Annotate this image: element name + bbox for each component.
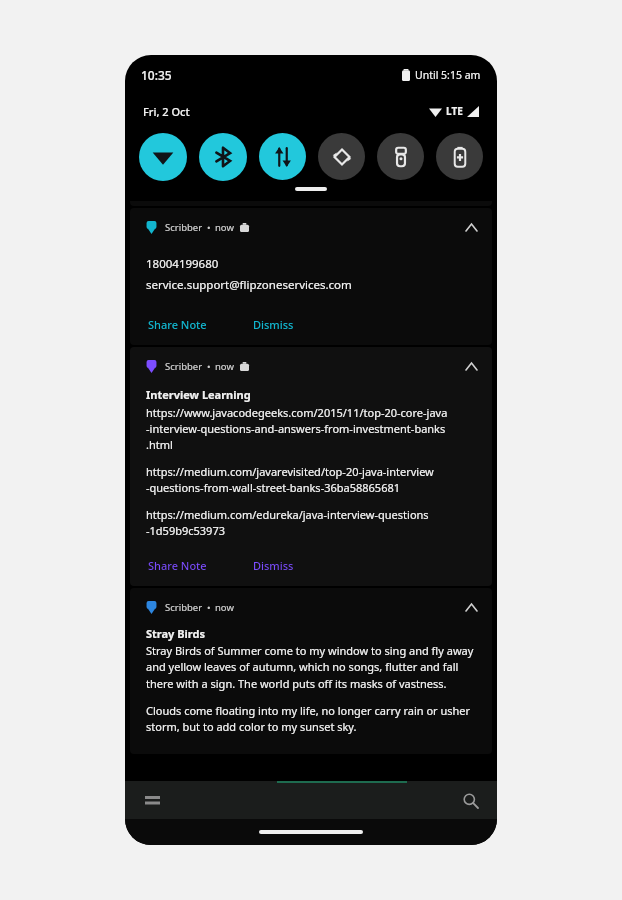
staticText: Share Note: [148, 558, 207, 573]
staticText: •: [207, 601, 211, 614]
staticText: Stray Birds of Summer come to my window …: [146, 643, 474, 691]
staticText: •: [207, 221, 211, 234]
staticText: Stray Birds: [146, 626, 206, 641]
staticText: now: [215, 601, 234, 614]
button[interactable]: Bluetooth: [199, 133, 247, 181]
button[interactable]: Wi-Fi: [139, 133, 187, 181]
staticText: now: [215, 221, 234, 234]
button[interactable]: Dismiss: [251, 313, 296, 336]
staticText: 10:35: [141, 67, 172, 83]
staticText: Scribber: [165, 360, 203, 373]
button[interactable]: Share Note: [146, 554, 209, 577]
staticText: service.support@flipzoneservices.com: [146, 277, 352, 293]
staticText: Fri, 2 Oct: [143, 104, 190, 119]
button[interactable]: Menu: [139, 787, 165, 813]
button[interactable]: Auto rotate: [318, 133, 365, 180]
staticText: https://medium.com/javarevisited/top-20-…: [146, 464, 434, 495]
button[interactable]: Search: [457, 787, 483, 813]
button[interactable]: Collapse: [460, 596, 482, 618]
button[interactable]: Scribber: [130, 347, 492, 586]
button[interactable]: Collapse: [460, 216, 482, 238]
staticText: https://www.javacodegeeks.com/2015/11/to…: [146, 405, 448, 452]
staticText: •: [207, 360, 211, 373]
staticText: now: [215, 360, 234, 373]
staticText: Dismiss: [253, 317, 294, 332]
button[interactable]: Share Note: [146, 313, 209, 336]
staticText: LTE: [446, 104, 463, 118]
staticText: Dismiss: [253, 558, 294, 573]
staticText: Scribber: [165, 221, 203, 234]
staticText: Scribber: [165, 601, 203, 614]
button[interactable]: Scribber: [130, 588, 492, 754]
button[interactable]: Dismiss: [251, 554, 296, 577]
staticText: Share Note: [148, 317, 207, 332]
button[interactable]: Mobile data: [259, 133, 306, 180]
staticText: https://medium.com/edureka/java-intervie…: [146, 507, 429, 538]
button[interactable]: Flashlight: [377, 133, 424, 180]
button[interactable]: [295, 187, 327, 191]
button[interactable]: Battery Saver: [436, 133, 483, 180]
staticText: Clouds come floating into my life, no lo…: [146, 703, 471, 734]
button[interactable]: Collapse: [460, 355, 482, 377]
staticText: 18004199680: [146, 256, 219, 272]
staticText: Interview Learning: [146, 387, 251, 402]
button[interactable]: Scribber: [130, 208, 492, 345]
staticText: Until 5:15 am: [415, 68, 481, 82]
